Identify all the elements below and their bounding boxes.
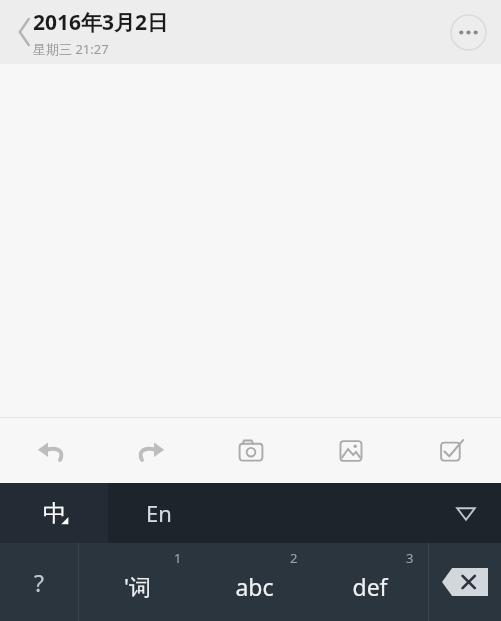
staticText: En <box>146 498 172 528</box>
staticText: ? <box>34 567 44 598</box>
button[interactable]: ? <box>0 543 78 621</box>
button[interactable]: More options <box>450 14 487 51</box>
button[interactable]: Hide keyboard <box>449 496 483 530</box>
button[interactable]: Switch input language <box>0 483 108 543</box>
staticText: 2016年3月2日 <box>33 8 169 37</box>
staticText: '词 <box>124 571 151 601</box>
button[interactable]: 3 <box>312 543 428 621</box>
staticText: def <box>352 571 388 602</box>
button[interactable]: Camera <box>201 418 301 483</box>
staticText: 1 <box>174 549 182 567</box>
staticText: 2 <box>290 549 298 567</box>
button[interactable]: Checklist <box>401 418 501 483</box>
button[interactable]: Insert image <box>301 418 401 483</box>
button[interactable]: Undo <box>0 418 101 483</box>
button[interactable]: En <box>108 483 501 543</box>
staticText: 星期三 21:27 <box>33 40 109 58</box>
staticText: 3 <box>406 549 414 567</box>
button[interactable]: 2 <box>196 543 312 621</box>
button[interactable]: 1 <box>79 543 196 621</box>
button[interactable]: Back <box>6 15 40 49</box>
staticText: 中 <box>43 499 66 528</box>
button[interactable]: Redo <box>101 418 201 483</box>
staticText: abc <box>235 571 274 602</box>
button[interactable]: Backspace <box>429 543 501 621</box>
